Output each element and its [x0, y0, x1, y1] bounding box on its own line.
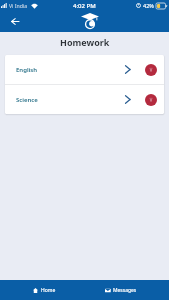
staticText: Home	[41, 287, 56, 294]
button[interactable]: Delete English	[145, 64, 157, 76]
staticText: Vi India	[9, 2, 28, 9]
button[interactable]: Back	[6, 13, 23, 30]
staticText: 4:02 PM	[73, 2, 96, 10]
button[interactable]: Messages	[104, 280, 138, 300]
staticText: Messages	[113, 287, 137, 294]
staticText: Science	[16, 96, 38, 104]
staticText: Homework	[60, 36, 110, 48]
staticText: English	[16, 66, 38, 74]
staticText: 42%	[143, 2, 154, 9]
button[interactable]: Open Science	[121, 93, 134, 106]
button[interactable]: Delete Science	[145, 94, 157, 106]
button[interactable]: Home	[32, 280, 57, 300]
button[interactable]: English	[5, 55, 164, 84]
button[interactable]: Open English	[121, 63, 134, 76]
button[interactable]: Science	[5, 85, 164, 114]
